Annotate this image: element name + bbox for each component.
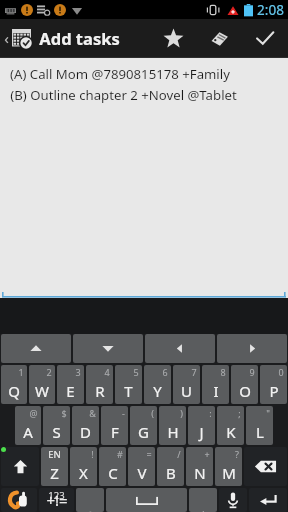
staticText: R — [95, 381, 105, 401]
button[interactable]: EN — [41, 447, 68, 486]
button[interactable]: ! — [70, 447, 97, 486]
staticText: W — [35, 381, 49, 401]
staticText: G — [138, 422, 149, 442]
button[interactable]: 1 — [1, 365, 27, 404]
button[interactable]: Backspace — [244, 447, 287, 486]
staticText: K — [226, 422, 236, 442]
button[interactable]: Enter — [249, 488, 287, 512]
staticText: O — [239, 381, 251, 401]
button[interactable]: Right — [217, 334, 287, 363]
button[interactable]: + — [186, 447, 213, 486]
staticText: X — [79, 463, 88, 483]
staticText: E — [66, 381, 75, 401]
button[interactable]: Voice input — [219, 488, 247, 512]
staticText: Y — [153, 381, 162, 401]
button[interactable]: 9 — [231, 365, 258, 404]
button[interactable]: = — [128, 447, 155, 486]
button[interactable]: Tags — [196, 19, 242, 57]
staticText: H — [167, 422, 179, 442]
button[interactable]: & — [72, 406, 99, 445]
staticText: C — [108, 463, 118, 483]
staticText: 8 — [220, 366, 226, 378]
staticText: Q — [8, 381, 20, 401]
staticText: (A) Call Mom @7890815178 +Family — [10, 65, 230, 83]
staticText: # — [117, 448, 123, 460]
staticText: ) — [180, 407, 183, 419]
staticText: 1 — [18, 366, 24, 378]
button[interactable]: 4 — [86, 365, 113, 404]
button[interactable]: @ — [15, 406, 41, 445]
staticText: (B) Outline chapter 2 +Novel @Tablet — [10, 86, 237, 104]
button[interactable]: 6 — [144, 365, 171, 404]
button[interactable]: Left — [145, 334, 215, 363]
staticText: I — [213, 381, 219, 401]
staticText: : — [209, 407, 212, 419]
staticText: , — [88, 497, 93, 512]
staticText: F — [111, 422, 119, 442]
staticText: B — [166, 463, 176, 483]
staticText: T — [124, 381, 133, 401]
staticText: 6 — [162, 366, 168, 378]
staticText: 2:08 — [257, 1, 284, 19]
staticText: V — [137, 463, 147, 483]
staticText: A — [23, 422, 33, 442]
staticText: U — [181, 381, 192, 401]
button[interactable]: # — [99, 447, 126, 486]
button[interactable]: Space — [106, 488, 187, 512]
staticText: Add tasks — [39, 27, 120, 49]
button[interactable]: 3 — [57, 365, 84, 404]
button[interactable]: - — [101, 406, 128, 445]
staticText: S — [52, 422, 61, 442]
staticText: N — [194, 463, 206, 483]
staticText: M — [222, 463, 236, 483]
staticText: + — [204, 448, 210, 460]
button[interactable]: , — [76, 488, 104, 512]
staticText: - — [122, 407, 125, 419]
button[interactable]: 0 — [260, 365, 287, 404]
button[interactable]: ) — [159, 406, 186, 445]
button[interactable]: Shift — [1, 447, 39, 486]
staticText: 123 — [48, 489, 65, 502]
button[interactable]: 8 — [202, 365, 229, 404]
button[interactable]: Down — [73, 334, 143, 363]
staticText: 3 — [75, 366, 81, 378]
staticText: ; — [238, 407, 241, 419]
button[interactable]: ‹ — [0, 19, 126, 57]
staticText: 4 — [104, 366, 110, 378]
button[interactable]: Done — [242, 19, 288, 57]
button[interactable]: . — [189, 488, 217, 512]
button[interactable]: $ — [43, 406, 70, 445]
staticText: = — [146, 448, 152, 460]
staticText: / — [177, 448, 181, 460]
staticText: J — [199, 422, 204, 442]
staticText: P — [269, 381, 279, 401]
staticText: $ — [61, 407, 67, 419]
button[interactable]: " — [246, 406, 273, 445]
staticText: L — [256, 422, 264, 442]
staticText: +!= — [46, 490, 68, 510]
button[interactable]: ( — [130, 406, 157, 445]
button[interactable]: 7 — [173, 365, 200, 404]
staticText: ‹ — [4, 28, 9, 48]
button[interactable]: 5 — [115, 365, 142, 404]
button[interactable]: Up — [1, 334, 71, 363]
staticText: ? — [235, 448, 239, 460]
staticText: D — [80, 422, 91, 442]
button[interactable]: ? — [215, 447, 242, 486]
button[interactable]: Priority — [150, 19, 196, 57]
staticText: & — [89, 407, 96, 419]
button[interactable]: 123 — [39, 488, 74, 512]
staticText: 9 — [249, 366, 255, 378]
button[interactable]: : — [188, 406, 215, 445]
button[interactable]: Gesture input — [1, 488, 37, 512]
staticText: 7 — [191, 366, 197, 378]
staticText: @ — [29, 407, 38, 419]
staticText: 5 — [133, 366, 139, 378]
staticText: EN — [48, 448, 61, 461]
staticText: " — [266, 407, 270, 419]
button[interactable]: / — [157, 447, 184, 486]
staticText: 2 — [46, 366, 52, 378]
button[interactable]: ; — [217, 406, 244, 445]
staticText: ( — [151, 407, 154, 419]
button[interactable]: 2 — [29, 365, 55, 404]
